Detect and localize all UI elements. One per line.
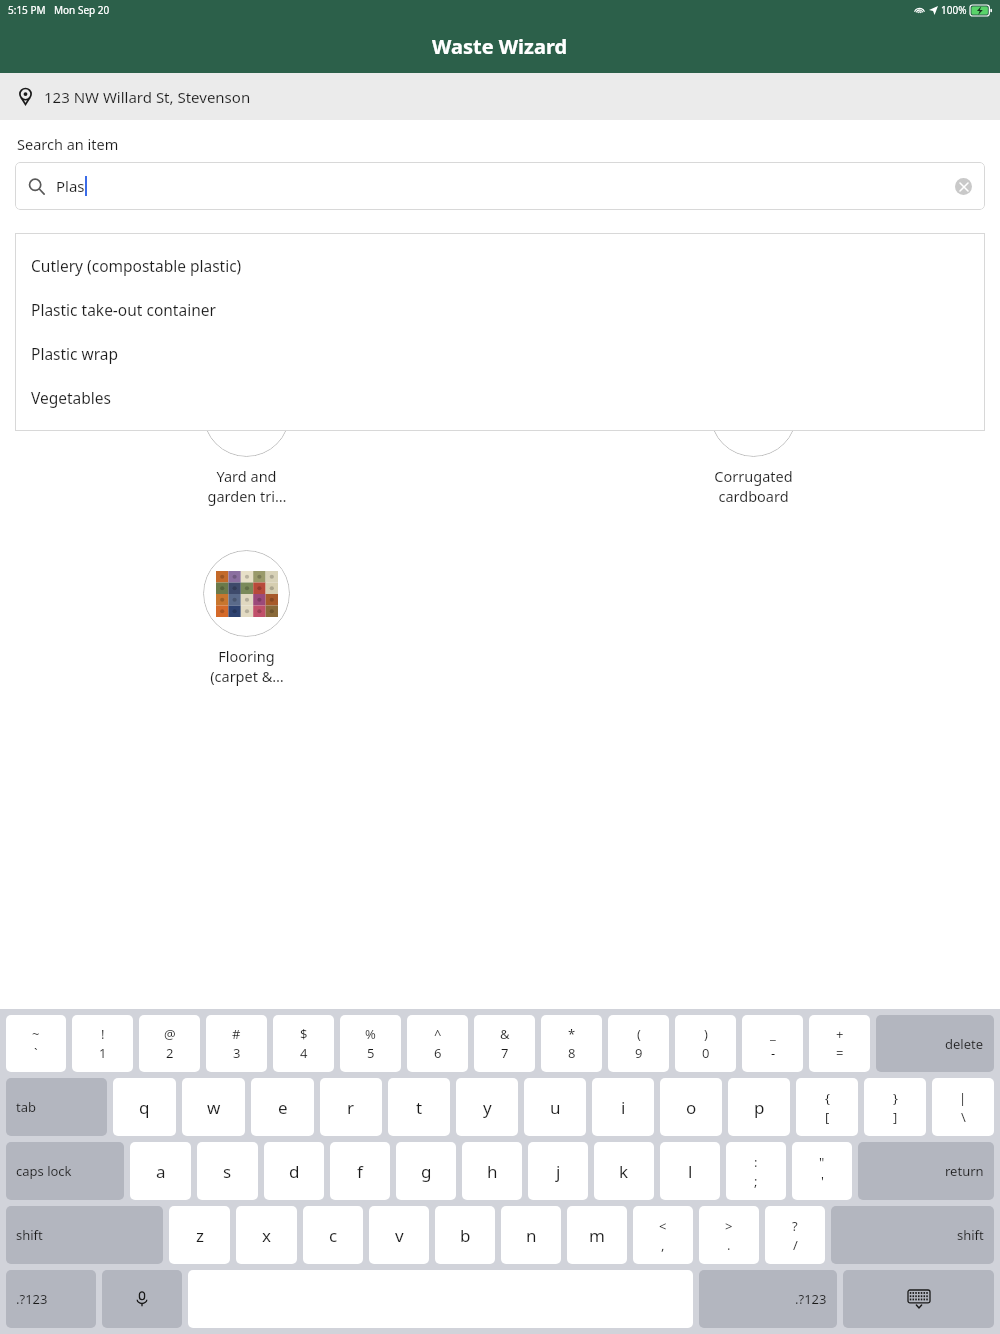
staticText: .?123 — [16, 1290, 48, 1308]
button[interactable]: : — [726, 1142, 786, 1200]
button[interactable]: Cutlery (compostable plastic) — [15, 243, 985, 287]
button[interactable]: Hide keyboard — [843, 1270, 994, 1328]
staticText: g — [421, 1160, 432, 1183]
staticText: Plastic take-out container — [31, 299, 216, 320]
button[interactable]: t — [388, 1078, 450, 1136]
button[interactable]: n — [501, 1206, 561, 1264]
staticText: . — [727, 1236, 731, 1254]
button[interactable]: s — [197, 1142, 258, 1200]
staticText: delete — [945, 1035, 984, 1053]
button[interactable]: q — [113, 1078, 176, 1136]
button[interactable]: Plas — [15, 162, 985, 210]
button[interactable]: p — [728, 1078, 790, 1136]
button[interactable]: ^ — [407, 1015, 468, 1072]
staticText: : — [754, 1153, 758, 1171]
button[interactable]: .?123 — [6, 1270, 96, 1328]
button[interactable]: x — [236, 1206, 297, 1264]
button[interactable]: Clear text — [955, 178, 972, 195]
button[interactable]: Plastic take-out container — [15, 287, 985, 331]
staticText: e — [278, 1096, 288, 1119]
button[interactable]: e — [251, 1078, 314, 1136]
staticText: .?123 — [795, 1290, 827, 1308]
button[interactable]: } — [864, 1078, 926, 1136]
button[interactable]: z — [169, 1206, 230, 1264]
staticText: 0 — [702, 1044, 710, 1062]
staticText: cardboard — [718, 486, 789, 506]
staticText: j — [556, 1160, 561, 1183]
button[interactable]: ? — [765, 1206, 825, 1264]
button[interactable]: _ — [742, 1015, 803, 1072]
button[interactable]: v — [369, 1206, 429, 1264]
staticText: y — [483, 1096, 492, 1119]
button[interactable]: { — [796, 1078, 858, 1136]
button[interactable]: u — [524, 1078, 586, 1136]
staticText: Plas — [56, 176, 85, 196]
button[interactable]: tab — [6, 1078, 107, 1136]
button[interactable]: & — [474, 1015, 535, 1072]
button[interactable]: + — [809, 1015, 870, 1072]
staticText: 4 — [300, 1044, 308, 1062]
staticText: v — [395, 1224, 404, 1247]
button[interactable]: < — [633, 1206, 693, 1264]
button[interactable]: g — [396, 1142, 456, 1200]
button[interactable]: Yard and — [203, 370, 290, 506]
staticText: | — [959, 1089, 967, 1107]
button[interactable]: caps lock — [6, 1142, 124, 1200]
button[interactable]: delete — [876, 1015, 994, 1072]
button[interactable]: > — [699, 1206, 759, 1264]
button[interactable]: " — [792, 1142, 852, 1200]
staticText: 5 — [367, 1044, 375, 1062]
button[interactable]: Dictation — [102, 1270, 182, 1328]
staticText: Yard and — [216, 466, 277, 486]
button[interactable]: Vegetables — [15, 375, 985, 419]
staticText: ) — [704, 1025, 708, 1043]
button[interactable]: * — [541, 1015, 602, 1072]
button[interactable]: 123 NW Willard St, Stevenson — [0, 73, 1000, 120]
staticText: { — [825, 1089, 830, 1107]
staticText: h — [487, 1160, 498, 1183]
button[interactable]: shift — [831, 1206, 994, 1264]
staticText: ( — [637, 1025, 641, 1043]
button[interactable]: .?123 — [699, 1270, 837, 1328]
button[interactable]: ~ — [6, 1015, 66, 1072]
button[interactable]: c — [303, 1206, 363, 1264]
button[interactable]: y — [456, 1078, 518, 1136]
button[interactable]: h — [462, 1142, 522, 1200]
button[interactable]: f — [330, 1142, 390, 1200]
button[interactable]: o — [660, 1078, 722, 1136]
staticText: ^ — [434, 1025, 442, 1043]
staticText: w — [207, 1096, 221, 1119]
button[interactable]: d — [264, 1142, 324, 1200]
button[interactable]: k — [594, 1142, 654, 1200]
button[interactable]: i — [592, 1078, 654, 1136]
staticText: # — [232, 1025, 241, 1043]
staticText: [ — [825, 1108, 830, 1126]
button[interactable]: @ — [139, 1015, 200, 1072]
staticText: / — [793, 1236, 798, 1254]
button[interactable]: shift — [6, 1206, 163, 1264]
staticText: shift — [16, 1226, 43, 1244]
button[interactable]: m — [567, 1206, 627, 1264]
button[interactable]: # — [206, 1015, 267, 1072]
button[interactable]: w — [182, 1078, 245, 1136]
button[interactable]: ) — [675, 1015, 736, 1072]
button[interactable]: j — [528, 1142, 588, 1200]
staticText: 123 NW Willard St, Stevenson — [44, 87, 251, 107]
button[interactable]: Corrugated — [710, 370, 797, 506]
button[interactable]: Flooring — [203, 550, 290, 686]
button[interactable]: Plastic wrap — [15, 331, 985, 375]
button[interactable]: b — [435, 1206, 495, 1264]
button[interactable]: % — [340, 1015, 401, 1072]
button[interactable]: ( — [608, 1015, 669, 1072]
button[interactable]: l — [660, 1142, 720, 1200]
button[interactable]: ! — [72, 1015, 133, 1072]
button[interactable]: r — [320, 1078, 382, 1136]
button[interactable]: return — [858, 1142, 994, 1200]
button[interactable]: $ — [273, 1015, 334, 1072]
staticText: Search an item — [17, 134, 119, 154]
button[interactable]: a — [130, 1142, 191, 1200]
staticText: Corrugated — [714, 466, 793, 486]
staticText: 6 — [434, 1044, 442, 1062]
button[interactable]: | — [932, 1078, 994, 1136]
